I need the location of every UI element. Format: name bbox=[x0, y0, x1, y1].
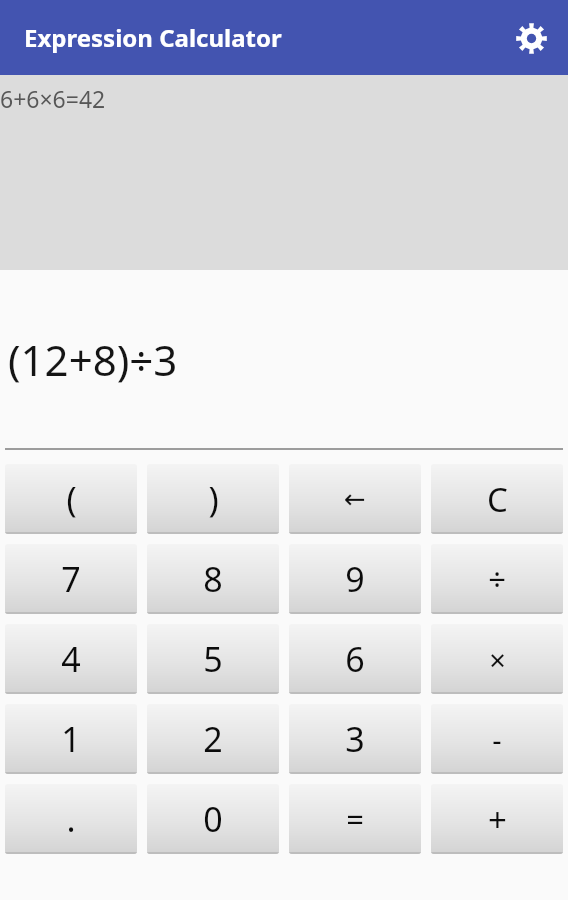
staticText: ) bbox=[208, 476, 219, 522]
staticText: 4 bbox=[61, 636, 81, 682]
staticText: 6 bbox=[345, 636, 365, 682]
button[interactable]: - bbox=[431, 704, 563, 774]
staticText: 1 bbox=[61, 716, 81, 762]
staticText: 2 bbox=[203, 716, 223, 762]
staticText: (12+8)÷3 bbox=[8, 331, 178, 388]
button[interactable]: 4 bbox=[5, 624, 137, 694]
staticText: 5 bbox=[203, 636, 223, 682]
button[interactable]: 7 bbox=[5, 544, 137, 614]
staticText: ← bbox=[344, 484, 366, 514]
button[interactable]: 5 bbox=[147, 624, 279, 694]
staticText: × bbox=[489, 640, 506, 679]
button[interactable]: 2 bbox=[147, 704, 279, 774]
staticText: + bbox=[488, 797, 507, 842]
staticText: . bbox=[66, 796, 76, 842]
button[interactable]: ) bbox=[147, 464, 279, 534]
staticText: 8 bbox=[203, 556, 223, 602]
button[interactable]: 1 bbox=[5, 704, 137, 774]
button[interactable]: 6 bbox=[289, 624, 421, 694]
button[interactable]: ( bbox=[5, 464, 137, 534]
staticText: = bbox=[346, 798, 364, 840]
staticText: 9 bbox=[345, 556, 365, 602]
button[interactable]: . bbox=[5, 784, 137, 854]
button[interactable]: C bbox=[431, 464, 563, 534]
staticText: 7 bbox=[61, 556, 81, 602]
button[interactable]: ÷ bbox=[431, 544, 563, 614]
button[interactable]: ← bbox=[289, 464, 421, 534]
button[interactable]: × bbox=[431, 624, 563, 694]
button[interactable]: 6+6×6=42 bbox=[0, 83, 106, 114]
staticText: Expression Calculator bbox=[24, 21, 282, 54]
staticText: ( bbox=[66, 476, 77, 522]
button[interactable]: Settings bbox=[508, 15, 554, 61]
button[interactable]: 3 bbox=[289, 704, 421, 774]
button[interactable]: 8 bbox=[147, 544, 279, 614]
button[interactable]: + bbox=[431, 784, 563, 854]
staticText: 3 bbox=[345, 716, 365, 762]
button[interactable]: 9 bbox=[289, 544, 421, 614]
staticText: - bbox=[492, 720, 502, 759]
staticText: 0 bbox=[203, 796, 223, 842]
staticText: ÷ bbox=[488, 558, 506, 600]
staticText: C bbox=[487, 477, 508, 522]
button[interactable]: 0 bbox=[147, 784, 279, 854]
button[interactable]: = bbox=[289, 784, 421, 854]
